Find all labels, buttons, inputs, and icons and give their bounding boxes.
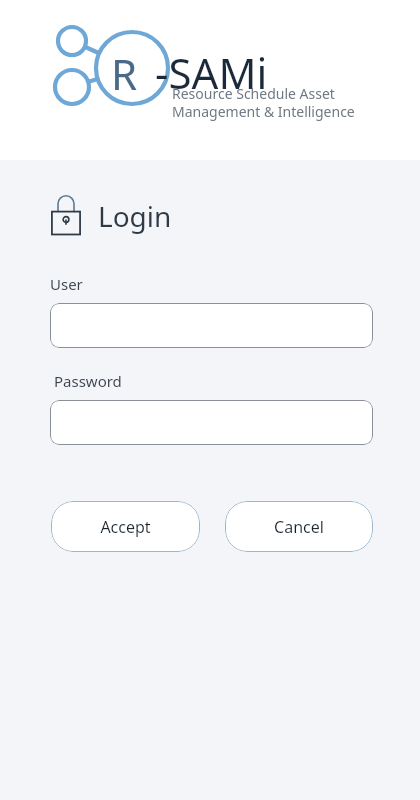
- staticText: Password: [54, 371, 122, 391]
- staticText: Resource Schedule Asset Management & Int…: [172, 84, 355, 121]
- button[interactable]: [50, 303, 373, 348]
- staticText: Accept: [100, 516, 151, 538]
- staticText: Login: [98, 197, 172, 235]
- staticText: -SAMi: [155, 44, 268, 101]
- button[interactable]: [50, 400, 373, 445]
- staticText: User: [50, 274, 83, 294]
- staticText: R: [111, 45, 138, 102]
- button[interactable]: Cancel: [225, 501, 373, 552]
- staticText: Cancel: [274, 516, 324, 538]
- button[interactable]: Accept: [51, 501, 200, 552]
